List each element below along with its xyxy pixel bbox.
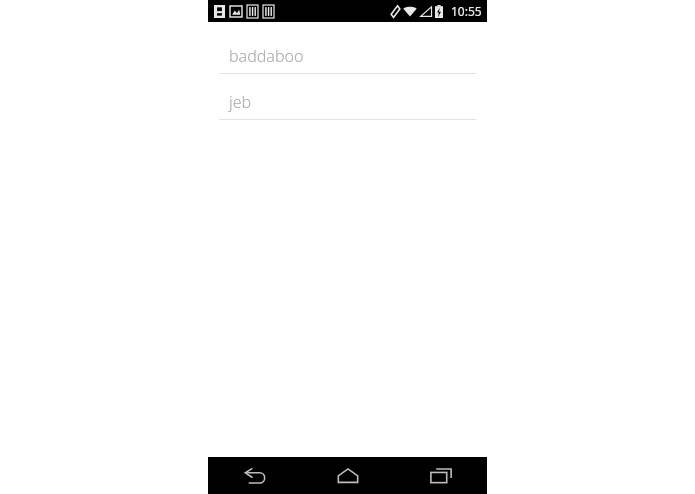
button[interactable]: Home xyxy=(301,457,394,494)
button[interactable]: baddaboo xyxy=(208,35,487,81)
button[interactable]: Recent apps xyxy=(394,457,487,494)
staticText: jeb xyxy=(229,91,252,113)
staticText: 10:55 xyxy=(451,3,482,19)
button[interactable]: Back xyxy=(208,457,301,494)
staticText: baddaboo xyxy=(229,45,304,67)
button[interactable]: jeb xyxy=(208,81,487,127)
